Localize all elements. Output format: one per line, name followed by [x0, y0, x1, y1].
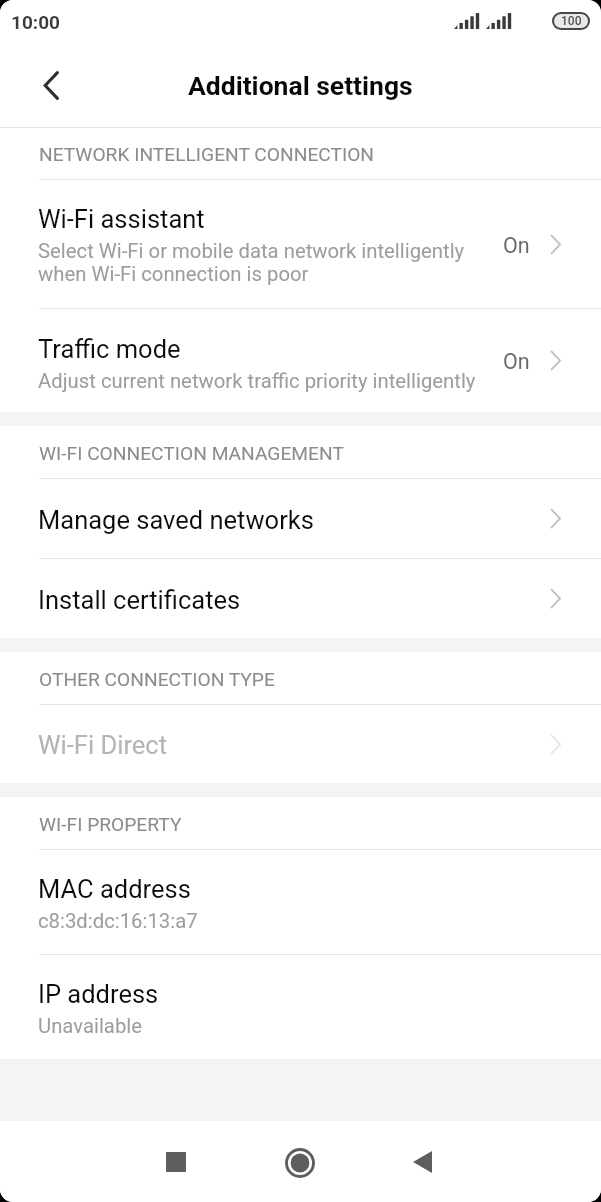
button[interactable]: Home — [264, 1128, 336, 1197]
staticText: On — [503, 349, 530, 374]
staticText: MAC address — [38, 874, 191, 904]
button[interactable]: Wi-Fi assistant — [0, 180, 601, 308]
staticText: Install certificates — [38, 585, 241, 615]
staticText: Wi-Fi assistant — [38, 204, 205, 234]
staticText: NETWORK INTELLIGENT CONNECTION — [39, 143, 375, 166]
button[interactable]: Traffic mode — [0, 309, 601, 412]
staticText: Manage saved networks — [38, 505, 314, 535]
staticText: WI-FI CONNECTION MANAGEMENT — [39, 442, 344, 465]
staticText: WI-FI PROPERTY — [39, 813, 182, 836]
button[interactable]: Install certificates — [0, 559, 601, 638]
button[interactable]: Recent apps — [140, 1127, 212, 1196]
staticText: Traffic mode — [38, 334, 181, 364]
staticText: On — [503, 233, 530, 258]
staticText: OTHER CONNECTION TYPE — [39, 668, 275, 691]
staticText: Adjust current network traffic priority … — [38, 369, 476, 393]
staticText: Select Wi-Fi or mobile data network inte… — [38, 239, 465, 286]
staticText: 100 — [561, 14, 582, 28]
button[interactable]: Back — [386, 1127, 458, 1196]
button[interactable]: MAC address — [0, 850, 601, 954]
staticText: Additional settings — [188, 70, 413, 101]
staticText: 10:00 — [11, 11, 60, 33]
staticText: IP address — [38, 979, 159, 1009]
staticText: Unavailable — [38, 1014, 142, 1038]
button[interactable]: IP address — [0, 955, 601, 1059]
button[interactable]: Wi-Fi Direct — [0, 705, 601, 783]
button[interactable]: Manage saved networks — [0, 479, 601, 558]
staticText: Wi-Fi Direct — [38, 730, 168, 760]
button[interactable]: Back — [28, 63, 74, 109]
staticText: c8:3d:dc:16:13:a7 — [38, 909, 198, 933]
